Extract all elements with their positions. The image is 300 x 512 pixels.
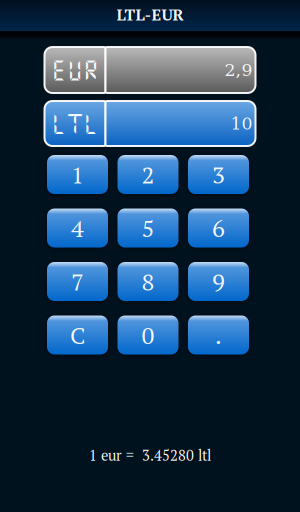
- button[interactable]: 0: [117, 315, 178, 354]
- staticText: 1: [71, 159, 84, 190]
- staticText: .: [215, 319, 222, 351]
- button[interactable]: 4: [47, 208, 108, 247]
- staticText: 10: [230, 113, 252, 134]
- button[interactable]: 2,9: [105, 47, 255, 93]
- button[interactable]: 9: [188, 262, 249, 301]
- button[interactable]: 1: [47, 155, 108, 194]
- staticText: 9: [212, 266, 225, 297]
- button[interactable]: 5: [117, 208, 178, 247]
- staticText: 8: [141, 266, 154, 297]
- staticText: 0: [141, 319, 154, 351]
- staticText: LTL-EUR: [116, 4, 183, 25]
- staticText: 1 eur = 3.45280 ltl: [89, 446, 211, 465]
- button[interactable]: 10: [105, 101, 255, 146]
- button[interactable]: EUR: [44, 47, 105, 93]
- button[interactable]: .: [188, 315, 249, 354]
- staticText: C: [70, 319, 85, 351]
- button[interactable]: 8: [117, 262, 178, 301]
- staticText: 7: [71, 266, 84, 297]
- staticText: 2,9: [224, 60, 252, 80]
- staticText: EUR: [51, 57, 99, 83]
- staticText: 6: [212, 212, 225, 244]
- staticText: LTL: [51, 111, 99, 136]
- staticText: 2: [141, 159, 154, 190]
- button[interactable]: LTL: [44, 101, 105, 146]
- button[interactable]: 7: [47, 262, 108, 301]
- staticText: 4: [71, 212, 84, 244]
- staticText: 5: [141, 212, 154, 244]
- button[interactable]: C: [47, 315, 108, 354]
- staticText: 3: [212, 159, 225, 190]
- button[interactable]: 3: [188, 155, 249, 194]
- button[interactable]: 6: [188, 208, 249, 247]
- button[interactable]: 2: [117, 155, 178, 194]
